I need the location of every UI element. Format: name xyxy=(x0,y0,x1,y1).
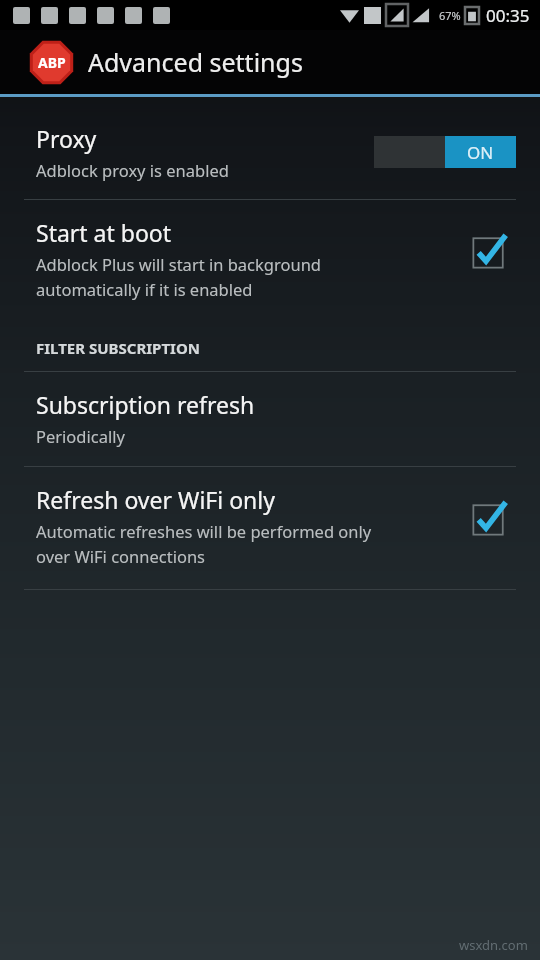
button[interactable]: Subscription refresh xyxy=(0,372,540,466)
staticText: over WiFi connections xyxy=(36,545,205,567)
staticText: Start at boot xyxy=(36,217,172,248)
staticText: automatically if it is enabled xyxy=(36,278,253,300)
button[interactable]: ABP xyxy=(0,30,540,94)
button[interactable]: Proxy switch, on xyxy=(374,136,516,168)
staticText: Adblock Plus will start in background xyxy=(36,253,321,275)
staticText: Automatic refreshes will be performed on… xyxy=(36,520,372,542)
staticText: ABP xyxy=(38,53,66,72)
button[interactable]: Toggle Start at boot xyxy=(468,227,514,273)
staticText: Refresh over WiFi only xyxy=(36,484,275,515)
button[interactable]: Proxy xyxy=(0,113,540,191)
button[interactable]: Toggle Refresh over WiFi only xyxy=(468,494,514,540)
staticText: Advanced settings xyxy=(88,45,303,79)
staticText: Subscription refresh xyxy=(36,389,255,420)
staticText: ON xyxy=(467,141,494,164)
staticText: FILTER SUBSCRIPTION xyxy=(36,338,200,358)
staticText: Periodically xyxy=(36,425,125,447)
staticText: wsxdn.com xyxy=(459,936,528,954)
staticText: 67% xyxy=(439,8,461,23)
button[interactable]: Start at boot xyxy=(0,200,540,322)
staticText: Proxy xyxy=(36,123,97,154)
staticText: 00:35 xyxy=(486,4,530,27)
staticText: Adblock proxy is enabled xyxy=(36,159,229,181)
button[interactable]: Refresh over WiFi only xyxy=(0,467,540,589)
